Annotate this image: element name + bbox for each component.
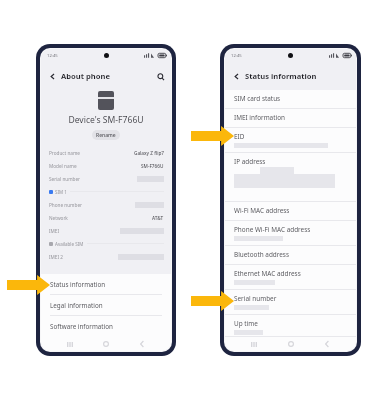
staticText: Bluetooth address xyxy=(234,250,289,259)
staticText: Model name xyxy=(49,163,77,169)
button[interactable]: Phone Wi-Fi MAC address xyxy=(225,221,356,246)
button[interactable]: Back xyxy=(135,337,149,351)
button[interactable]: Bluetooth address xyxy=(225,246,356,265)
button[interactable]: Back xyxy=(46,70,59,83)
button[interactable]: IP address xyxy=(225,153,356,202)
staticText: EID xyxy=(234,132,245,141)
staticText: IMEI information xyxy=(234,113,285,122)
staticText: Phone Wi-Fi MAC address xyxy=(234,225,311,234)
staticText: Ethernet MAC address xyxy=(234,269,301,278)
button[interactable]: IMEI 2 xyxy=(41,250,171,263)
staticText: 12:45 xyxy=(231,53,242,59)
button[interactable]: Phone number xyxy=(41,198,171,211)
staticText: Serial number xyxy=(234,294,277,303)
button[interactable]: Serial number xyxy=(225,290,356,315)
staticText: SM-F766U xyxy=(141,163,164,169)
staticText: Galaxy Z flip7 xyxy=(134,150,164,156)
button[interactable]: Network xyxy=(41,211,171,224)
button[interactable]: Home xyxy=(99,337,113,351)
staticText: Status information xyxy=(245,71,317,81)
staticText: Legal information xyxy=(50,301,103,310)
button[interactable]: SIM card status xyxy=(225,90,356,109)
staticText: Available SIM xyxy=(55,241,84,247)
button[interactable]: Ethernet MAC address xyxy=(225,265,356,290)
button[interactable]: Home xyxy=(284,337,298,351)
button[interactable]: Recents xyxy=(247,337,261,351)
button[interactable]: Status information xyxy=(41,274,171,295)
button[interactable]: Serial number xyxy=(41,172,171,185)
button[interactable]: IMEI information xyxy=(225,109,356,128)
staticText: AT&T xyxy=(152,215,164,221)
button[interactable]: Wi-Fi MAC address xyxy=(225,202,356,221)
staticText: Wi-Fi MAC address xyxy=(234,206,290,215)
button[interactable]: Up time xyxy=(225,315,356,337)
staticText: IP address xyxy=(234,157,266,166)
staticText: Phone number xyxy=(49,202,82,208)
staticText: Serial number xyxy=(49,176,81,182)
staticText: Network xyxy=(49,215,68,221)
staticText: Software information xyxy=(50,322,113,331)
staticText: Rename xyxy=(96,132,116,139)
staticText: 12:45 xyxy=(47,53,58,59)
button[interactable]: Rename xyxy=(92,130,120,140)
staticText: Status information xyxy=(50,280,106,289)
staticText: SIM 1 xyxy=(55,189,67,195)
button[interactable]: Search xyxy=(154,70,167,83)
staticText: Up time xyxy=(234,319,258,328)
button[interactable]: Software information xyxy=(41,316,171,337)
button[interactable]: Product name xyxy=(41,146,171,159)
button[interactable]: EID xyxy=(225,128,356,153)
button[interactable]: IMEI xyxy=(41,224,171,237)
staticText: About phone xyxy=(61,71,110,81)
button[interactable]: Legal information xyxy=(41,295,171,316)
button[interactable]: Back xyxy=(320,337,334,351)
button[interactable]: Recents xyxy=(63,337,77,351)
staticText: Product name xyxy=(49,150,81,156)
button[interactable]: Back xyxy=(230,70,243,83)
staticText: Device's SM-F766U xyxy=(41,114,171,126)
staticText: SIM card status xyxy=(234,94,281,103)
button[interactable]: Model name xyxy=(41,159,171,172)
staticText: IMEI xyxy=(49,228,60,234)
staticText: IMEI 2 xyxy=(49,254,63,260)
